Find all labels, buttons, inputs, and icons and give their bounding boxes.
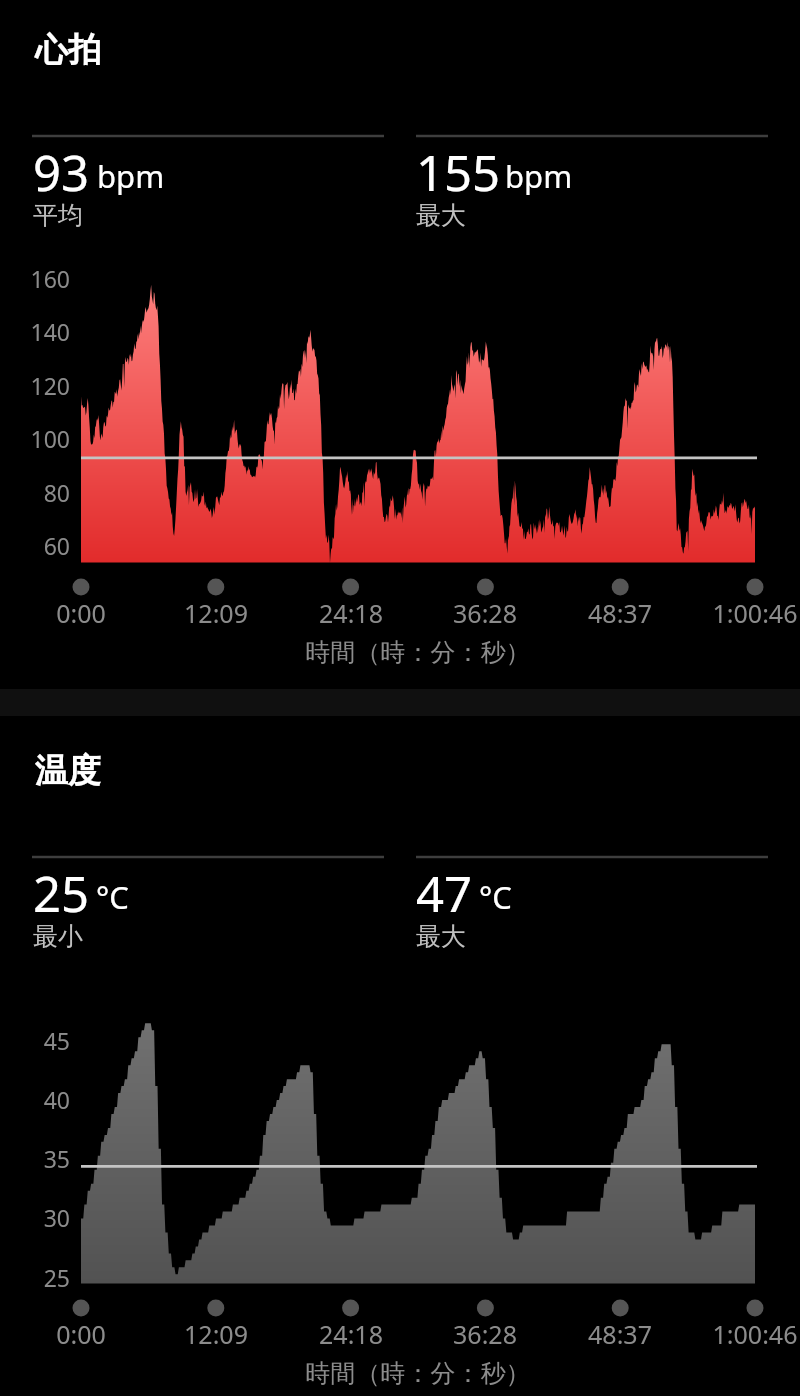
staticText: 100 bbox=[10, 423, 70, 454]
staticText: °C bbox=[479, 876, 512, 918]
staticText: °C bbox=[96, 876, 129, 918]
staticText: 最大 bbox=[416, 921, 466, 952]
staticText: 155 bbox=[416, 139, 501, 206]
staticText: 12:09 bbox=[151, 1317, 281, 1351]
staticText: 24:18 bbox=[286, 596, 416, 630]
staticText: 160 bbox=[10, 263, 70, 294]
button[interactable]: 47 bbox=[416, 851, 768, 956]
staticText: 平均 bbox=[33, 200, 83, 231]
staticText: 0:00 bbox=[16, 1317, 146, 1351]
staticText: bpm bbox=[97, 155, 165, 197]
button[interactable]: 心拍 bbox=[32, 22, 232, 70]
button[interactable]: 25 bbox=[32, 851, 384, 956]
staticText: 25 bbox=[33, 860, 90, 927]
staticText: 48:37 bbox=[555, 1317, 685, 1351]
button[interactable]: 温度 bbox=[0, 721, 800, 1396]
staticText: 1:00:46 bbox=[690, 1317, 800, 1351]
staticText: 45 bbox=[10, 1025, 70, 1056]
staticText: 25 bbox=[10, 1262, 70, 1293]
staticText: 最小 bbox=[33, 921, 83, 952]
staticText: 時間（時：分：秒） bbox=[218, 1358, 618, 1389]
staticText: 温度 bbox=[35, 750, 101, 792]
staticText: 80 bbox=[10, 477, 70, 508]
staticText: 12:09 bbox=[151, 596, 281, 630]
staticText: 36:28 bbox=[420, 596, 550, 630]
staticText: 24:18 bbox=[286, 1317, 416, 1351]
staticText: 47 bbox=[416, 860, 473, 927]
button[interactable]: 心拍 bbox=[0, 0, 800, 689]
staticText: 心拍 bbox=[35, 29, 101, 71]
button[interactable]: 155 bbox=[416, 130, 768, 235]
staticText: 60 bbox=[10, 530, 70, 561]
staticText: 1:00:46 bbox=[690, 596, 800, 630]
staticText: 0:00 bbox=[16, 596, 146, 630]
staticText: 48:37 bbox=[555, 596, 685, 630]
staticText: 30 bbox=[10, 1202, 70, 1233]
staticText: 120 bbox=[10, 370, 70, 401]
staticText: bpm bbox=[505, 155, 573, 197]
button[interactable]: 温度 bbox=[32, 743, 232, 791]
staticText: 最大 bbox=[416, 200, 466, 231]
staticText: 40 bbox=[10, 1084, 70, 1115]
staticText: 36:28 bbox=[420, 1317, 550, 1351]
staticText: 93 bbox=[33, 139, 90, 206]
button[interactable]: 93 bbox=[32, 130, 384, 235]
staticText: 140 bbox=[10, 316, 70, 347]
staticText: 35 bbox=[10, 1143, 70, 1174]
staticText: 時間（時：分：秒） bbox=[218, 637, 618, 668]
